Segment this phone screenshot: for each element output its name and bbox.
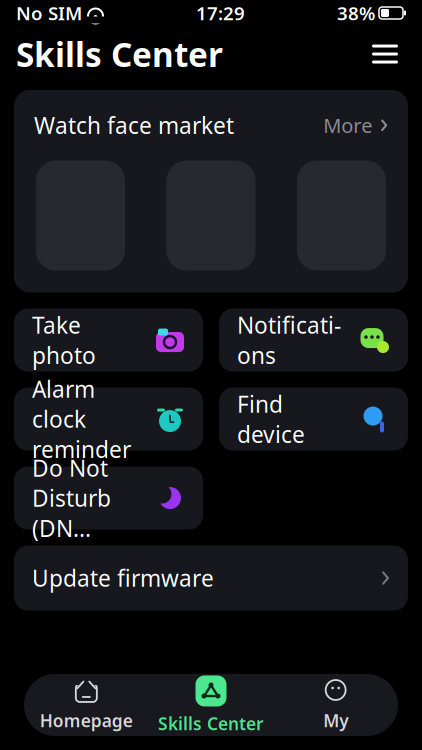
button[interactable]: Update firmware <box>14 546 408 611</box>
staticText: My <box>323 709 348 732</box>
staticText: Notifications <box>237 310 341 370</box>
staticText: Update firmware <box>32 563 214 593</box>
staticText: 38% <box>337 1 375 25</box>
button[interactable]: Homepage <box>24 678 149 732</box>
staticText: Homepage <box>40 709 133 732</box>
staticText: Find device <box>237 389 305 449</box>
button[interactable]: Find device <box>219 388 408 451</box>
staticText: Do Not Disturb (DN... <box>32 453 111 543</box>
staticText: Watch face market <box>34 110 234 140</box>
button[interactable]: Do Not Disturb (DN... <box>14 467 203 530</box>
staticText: More <box>323 112 372 139</box>
button[interactable]: My <box>273 678 398 732</box>
staticText: Skills Center <box>16 32 223 76</box>
button[interactable]: Menu <box>364 36 406 71</box>
button[interactable]: Take photo <box>14 309 203 372</box>
staticText: No SIM <box>16 1 82 25</box>
staticText: 17:29 <box>196 1 245 25</box>
button[interactable]: Notifications <box>219 309 408 372</box>
staticText: Skills Center <box>158 712 264 735</box>
button[interactable]: Watch face 1 <box>36 161 125 271</box>
button[interactable]: Watch face 2 <box>166 161 255 271</box>
button[interactable]: More <box>323 108 388 143</box>
button[interactable]: Skills Center <box>149 675 273 735</box>
button[interactable]: Alarm clock reminder <box>14 388 203 451</box>
staticText: Take photo <box>32 310 96 370</box>
button[interactable]: Watch face 3 <box>297 161 386 271</box>
staticText: Alarm clock reminder <box>32 374 131 464</box>
